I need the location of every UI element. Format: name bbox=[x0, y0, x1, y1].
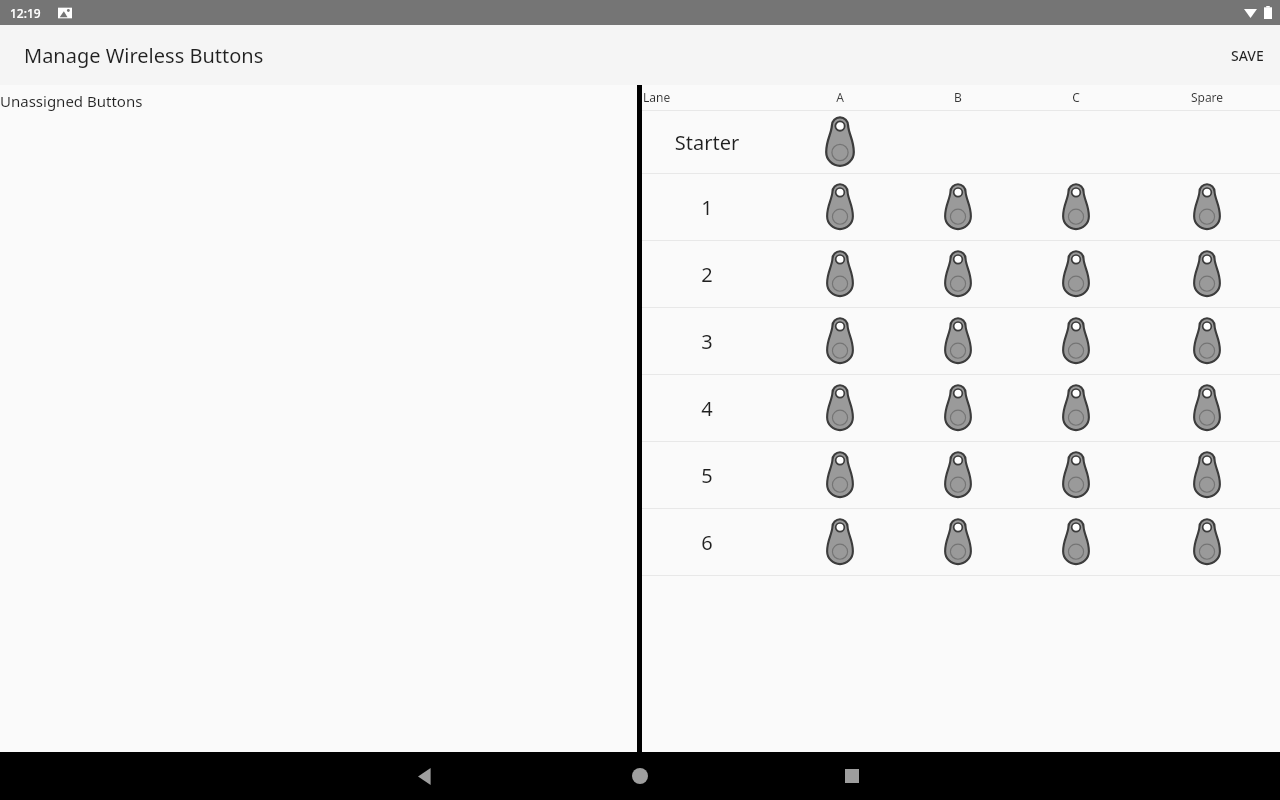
button[interactable]: Wireless button fob bbox=[826, 251, 854, 297]
staticText: 2 bbox=[647, 261, 767, 288]
button[interactable]: Wireless button fob bbox=[1193, 251, 1221, 297]
button[interactable]: Wireless button fob bbox=[1193, 385, 1221, 431]
button[interactable]: 6 bbox=[642, 509, 1280, 575]
button[interactable]: Wireless button fob bbox=[1193, 452, 1221, 498]
button[interactable]: Wireless button fob bbox=[1062, 184, 1090, 230]
button[interactable]: Wireless button fob bbox=[1193, 318, 1221, 364]
staticText: A bbox=[800, 89, 880, 105]
button[interactable]: Wireless button fob bbox=[1062, 385, 1090, 431]
button[interactable]: 5 bbox=[642, 442, 1280, 508]
button[interactable]: Wireless button fob bbox=[826, 519, 854, 565]
staticText: 4 bbox=[647, 395, 767, 422]
staticText: 6 bbox=[647, 529, 767, 556]
button[interactable]: Home bbox=[616, 752, 664, 800]
staticText: 1 bbox=[647, 194, 767, 221]
button[interactable]: Wireless button fob bbox=[1193, 519, 1221, 565]
staticText: Starter bbox=[647, 129, 767, 156]
staticText: Unassigned Buttons bbox=[0, 91, 143, 111]
button[interactable]: Wireless button fob bbox=[1062, 452, 1090, 498]
button[interactable]: 1 bbox=[642, 174, 1280, 240]
button[interactable]: 2 bbox=[642, 241, 1280, 307]
staticText: Lane bbox=[643, 89, 671, 105]
button[interactable]: Wireless button fob bbox=[826, 452, 854, 498]
button[interactable]: Starter bbox=[642, 111, 1280, 173]
button[interactable]: Wireless button fob bbox=[944, 251, 972, 297]
button[interactable]: Wireless button fob bbox=[944, 318, 972, 364]
button[interactable]: SAVE bbox=[1215, 32, 1280, 79]
staticText: 5 bbox=[647, 462, 767, 489]
button[interactable]: Wireless button fob bbox=[1193, 184, 1221, 230]
staticText: Spare bbox=[1167, 89, 1247, 105]
button[interactable]: Wireless button fob bbox=[944, 385, 972, 431]
staticText: B bbox=[918, 89, 998, 105]
staticText: 12:19 bbox=[10, 5, 41, 21]
staticText: 3 bbox=[647, 328, 767, 355]
button[interactable]: 3 bbox=[642, 308, 1280, 374]
button[interactable]: 4 bbox=[642, 375, 1280, 441]
button[interactable]: Wireless button fob bbox=[825, 117, 855, 167]
button[interactable]: Wireless button fob bbox=[944, 452, 972, 498]
button[interactable]: Wireless button fob bbox=[826, 184, 854, 230]
button[interactable]: Wireless button fob bbox=[944, 519, 972, 565]
button[interactable]: Wireless button fob bbox=[944, 184, 972, 230]
button[interactable]: Wireless button fob bbox=[826, 385, 854, 431]
button[interactable]: Wireless button fob bbox=[1062, 318, 1090, 364]
button[interactable]: Back bbox=[401, 752, 449, 800]
button[interactable]: Recent apps bbox=[828, 752, 876, 800]
staticText: SAVE bbox=[1231, 46, 1264, 65]
button[interactable]: Wireless button fob bbox=[1062, 519, 1090, 565]
staticText: Manage Wireless Buttons bbox=[24, 42, 264, 69]
button[interactable]: Wireless button fob bbox=[826, 318, 854, 364]
staticText: C bbox=[1036, 89, 1116, 105]
button[interactable]: Wireless button fob bbox=[1062, 251, 1090, 297]
